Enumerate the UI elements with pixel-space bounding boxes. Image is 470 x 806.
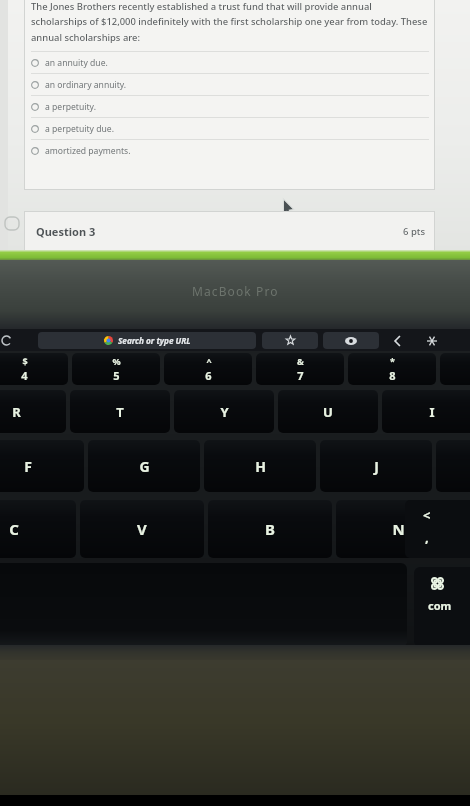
staticText: U xyxy=(323,403,333,421)
staticText: G xyxy=(139,457,150,476)
staticText: $ xyxy=(22,355,28,367)
button[interactable]: Back xyxy=(385,332,409,349)
button[interactable]: a perpetuity due. xyxy=(31,118,429,139)
staticText: Y xyxy=(220,403,229,421)
button[interactable]: Search or type URL xyxy=(38,332,256,349)
button[interactable]: R xyxy=(0,390,66,433)
staticText: a perpetuity. xyxy=(45,101,96,113)
button[interactable]: B xyxy=(208,500,332,558)
button[interactable]: 8 xyxy=(348,353,436,385)
staticText: C xyxy=(9,519,19,539)
button[interactable]: amortized payments. xyxy=(31,140,429,161)
staticText: 5 xyxy=(113,368,120,383)
staticText: < xyxy=(423,506,431,524)
button[interactable]: N xyxy=(336,500,460,558)
button[interactable]: View xyxy=(323,332,379,349)
button[interactable]: an ordinary annuity. xyxy=(31,74,429,95)
staticText: 8 xyxy=(389,368,396,383)
button[interactable]: V xyxy=(80,500,204,558)
staticText: T xyxy=(116,403,124,421)
button[interactable]: 4 xyxy=(0,353,68,385)
staticText: % xyxy=(112,355,121,367)
button[interactable]: Reload xyxy=(0,333,18,348)
staticText: an annuity due. xyxy=(45,57,108,69)
button[interactable]: Bookmark xyxy=(262,332,318,349)
staticText: 6 pts xyxy=(403,225,426,238)
button[interactable]: G xyxy=(88,440,200,492)
staticText: V xyxy=(137,519,147,539)
button[interactable]: Space xyxy=(0,563,407,647)
staticText: MacBook Pro xyxy=(192,283,279,299)
staticText: H xyxy=(255,457,266,476)
staticText: J xyxy=(374,457,379,476)
staticText: N xyxy=(392,519,405,539)
button[interactable]: K xyxy=(436,440,470,492)
staticText: ^ xyxy=(206,355,212,367)
button[interactable]: 6 xyxy=(164,353,252,385)
button[interactable]: < xyxy=(405,500,470,558)
button[interactable]: a perpetuity. xyxy=(31,96,429,117)
staticText: I xyxy=(429,403,435,421)
staticText: a perpetuity due. xyxy=(45,123,114,135)
staticText: an ordinary annuity. xyxy=(45,79,127,91)
staticText: amortized payments. xyxy=(45,145,131,157)
button[interactable]: 7 xyxy=(256,353,344,385)
staticText: F xyxy=(24,457,32,476)
button[interactable]: Question 3 xyxy=(36,211,426,252)
button[interactable]: an annuity due. xyxy=(31,52,429,73)
staticText: R xyxy=(12,403,21,421)
staticText: * xyxy=(390,355,395,367)
staticText: com xyxy=(428,598,452,613)
button[interactable]: Y xyxy=(174,390,274,433)
staticText: , xyxy=(425,528,429,546)
button[interactable]: H xyxy=(204,440,316,492)
button[interactable]: J xyxy=(320,440,432,492)
staticText: B xyxy=(265,519,275,539)
button[interactable]: I xyxy=(382,390,470,433)
button[interactable]: T xyxy=(70,390,170,433)
button[interactable]: 5 xyxy=(72,353,160,385)
button[interactable]: Brightness xyxy=(420,332,444,349)
staticText: & xyxy=(297,355,304,367)
button[interactable]: 9 xyxy=(440,353,470,385)
staticText: Question 3 xyxy=(36,224,96,239)
button[interactable]: C xyxy=(0,500,76,558)
button[interactable]: F xyxy=(0,440,84,492)
staticText: Search or type URL xyxy=(118,335,191,346)
button[interactable]: U xyxy=(278,390,378,433)
staticText: 4 xyxy=(21,368,28,383)
staticText: 7 xyxy=(297,368,304,383)
staticText: The Jones Brothers recently established … xyxy=(31,0,430,44)
button[interactable]: Command xyxy=(414,567,470,647)
staticText: 6 xyxy=(205,368,212,383)
